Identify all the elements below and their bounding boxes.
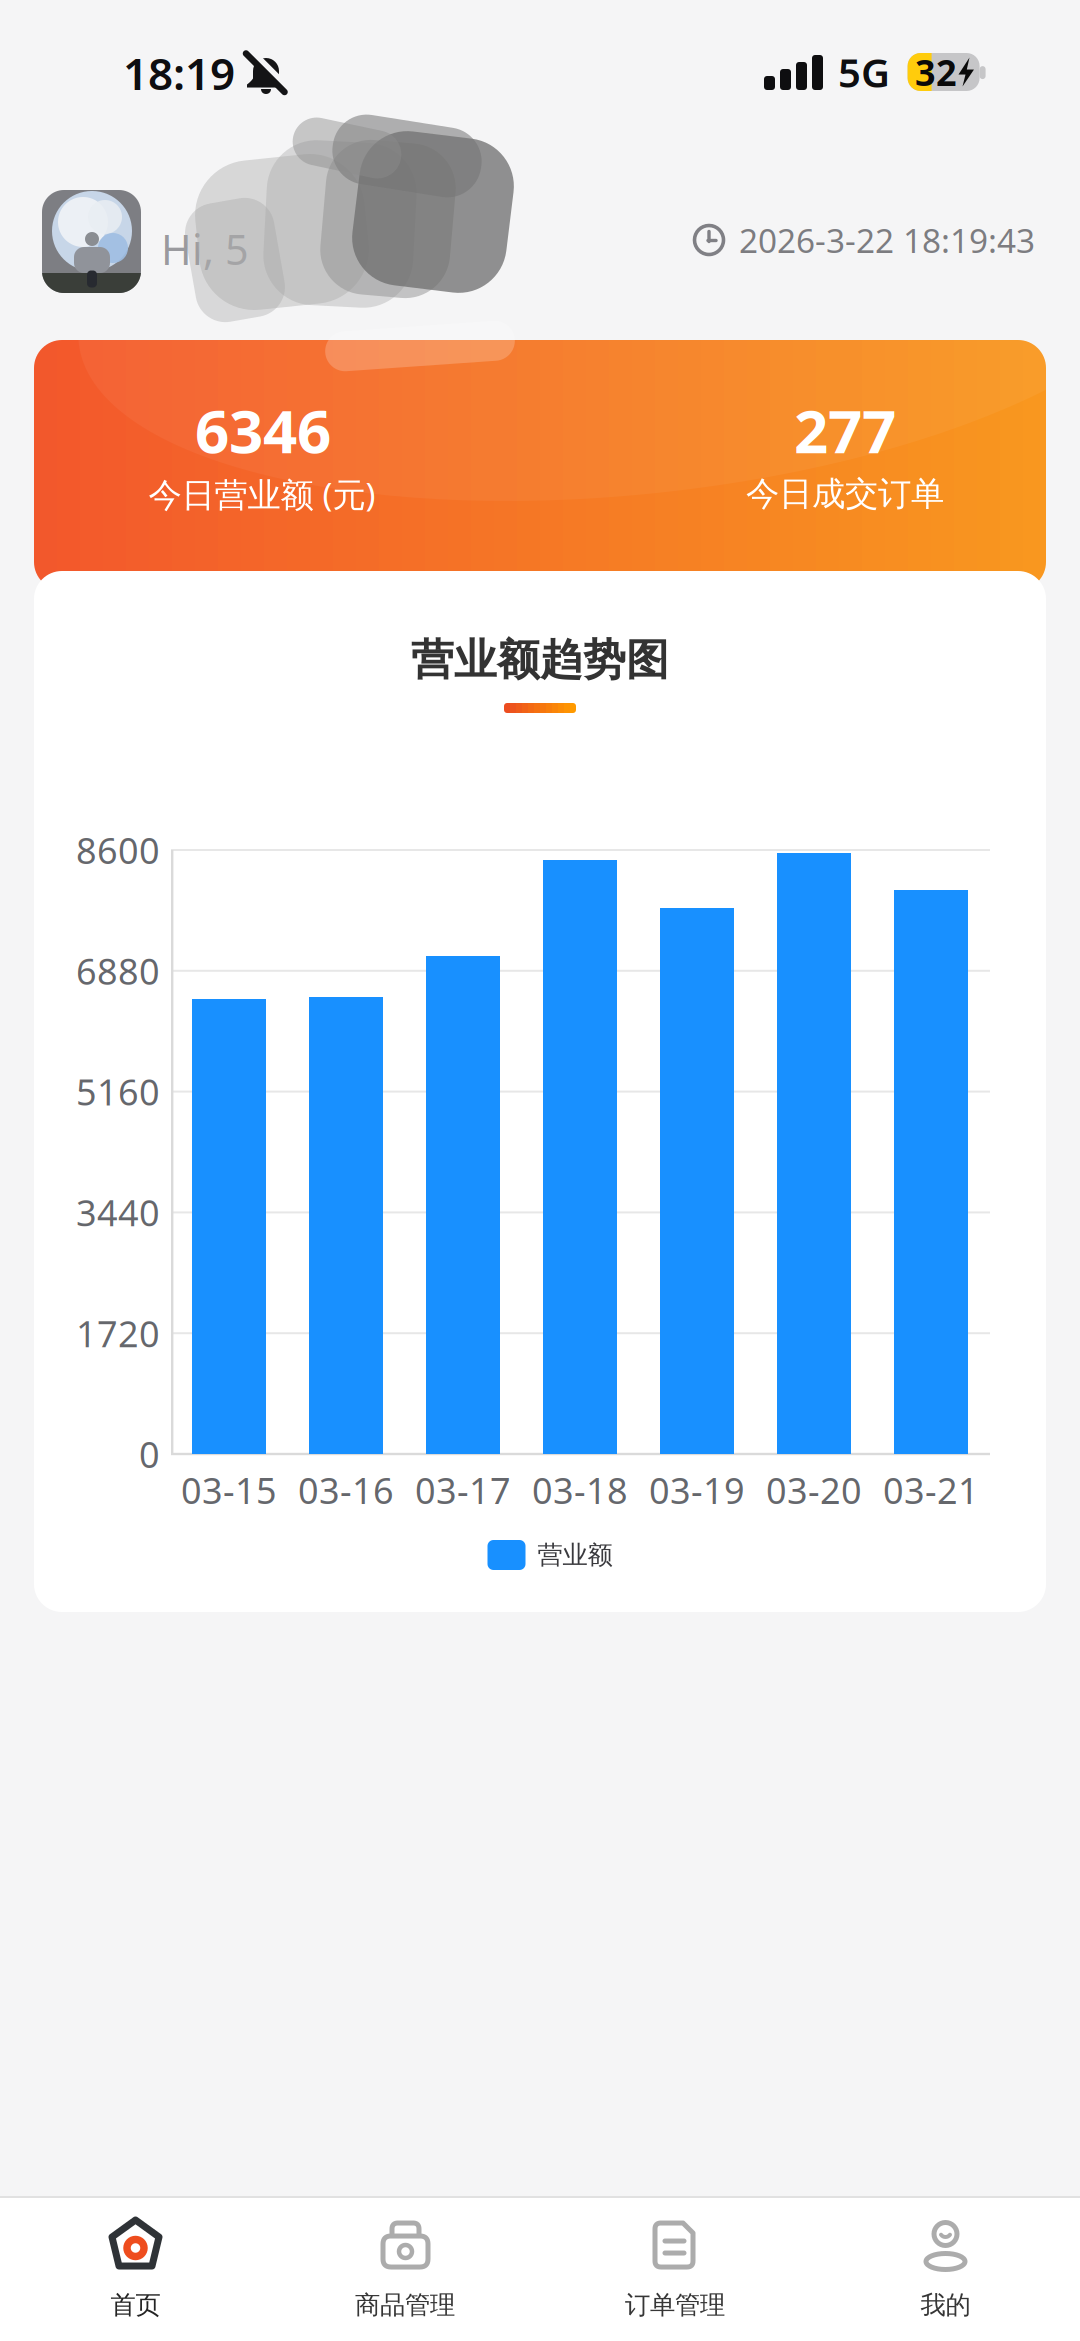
staticText: 03-16 — [298, 1466, 394, 1514]
button[interactable]: 商品管理 — [270, 2198, 540, 2341]
staticText: 03-17 — [415, 1466, 511, 1514]
staticText: 营业额 — [537, 1539, 612, 1570]
staticText: 订单管理 — [625, 2289, 725, 2320]
button[interactable]: 订单管理 — [540, 2198, 810, 2341]
staticText: 277 — [794, 390, 896, 470]
staticText: 6880 — [76, 947, 160, 995]
staticText: 5160 — [76, 1068, 160, 1115]
staticText: 今日成交订单 — [746, 473, 944, 514]
staticText: 03-18 — [532, 1466, 628, 1514]
staticText: 32 — [915, 48, 957, 96]
staticText: 5G — [838, 45, 890, 98]
button[interactable]: Profile — [0, 0, 1080, 2341]
staticText: 18:19 — [123, 44, 235, 102]
staticText: 03-19 — [649, 1466, 745, 1514]
button[interactable]: 我的 — [810, 2198, 1080, 2341]
staticText: 商品管理 — [355, 2289, 455, 2320]
staticText: 营业额趋势图 — [411, 634, 669, 686]
staticText: 2026-3-22 18:19:43 — [739, 218, 1035, 262]
staticText: 6346 — [195, 390, 331, 470]
staticText: 我的 — [920, 2289, 970, 2320]
staticText: 首页 — [110, 2289, 160, 2320]
staticText: Hi, 5 — [161, 222, 249, 276]
staticText: 03-21 — [883, 1466, 979, 1514]
staticText: 0 — [139, 1430, 160, 1478]
staticText: 03-20 — [766, 1466, 862, 1514]
button[interactable]: 首页 — [0, 2198, 270, 2341]
staticText: 今日营业额 (元) — [148, 472, 375, 516]
staticText: 03-15 — [181, 1466, 277, 1514]
staticText: 8600 — [76, 826, 160, 874]
staticText: 1720 — [76, 1309, 160, 1357]
staticText: 3440 — [76, 1188, 160, 1236]
